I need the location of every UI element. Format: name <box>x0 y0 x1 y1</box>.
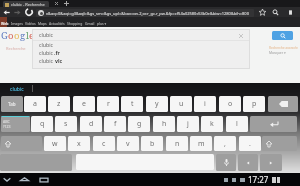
staticText: . <box>249 139 251 149</box>
button[interactable]: Tab <box>1 96 23 112</box>
button[interactable]: clubic <box>32 29 250 40</box>
button[interactable]: y <box>146 96 168 112</box>
staticText: Shopping <box>67 21 83 26</box>
staticText: clubic <box>39 31 54 38</box>
staticText: ABC <box>3 119 10 124</box>
staticText: a <box>33 99 37 109</box>
staticText: clubic <box>39 41 54 48</box>
button[interactable]: clubic <box>32 40 250 48</box>
button[interactable]: s <box>55 116 77 132</box>
button[interactable]: clubic - Recherche Go… <box>3 1 49 8</box>
staticText: e <box>82 99 86 109</box>
button[interactable]: z <box>48 96 70 112</box>
button[interactable]: Bookmark <box>257 7 268 17</box>
button[interactable]: Shift <box>1 136 42 151</box>
staticText: u <box>179 99 184 109</box>
staticText: plus ▾ <box>97 21 107 26</box>
button[interactable]: g <box>128 116 150 132</box>
staticText: Actualités <box>49 21 65 26</box>
button[interactable]: Shift <box>262 136 297 151</box>
button[interactable]: Back <box>1 173 12 186</box>
staticText: clubic <box>39 57 55 64</box>
button[interactable]: i <box>194 96 216 112</box>
button[interactable]: Enter <box>250 116 297 132</box>
button[interactable]: Web <box>0 20 10 26</box>
staticText: c <box>102 139 106 149</box>
button[interactable]: , <box>214 136 236 151</box>
staticText: o <box>8 29 14 42</box>
button[interactable]: f <box>104 116 126 132</box>
button[interactable]: Masquer ▾ <box>269 50 286 55</box>
button[interactable]: Symbols <box>1 116 30 132</box>
staticText: l <box>26 29 29 42</box>
button[interactable]: Vidéos <box>24 20 37 26</box>
button[interactable]: Backspace <box>268 96 298 112</box>
button[interactable]: Gmail <box>84 20 96 26</box>
button[interactable]: clubic <box>3 84 31 94</box>
button[interactable]: n <box>166 136 188 151</box>
button[interactable]: Move right <box>260 154 282 171</box>
button[interactable]: Menu <box>285 7 296 17</box>
button[interactable]: . <box>239 136 261 151</box>
button[interactable]: t <box>121 96 143 112</box>
staticText: Tab <box>8 101 16 107</box>
staticText: s <box>64 119 68 129</box>
button[interactable]: x <box>68 136 90 151</box>
button[interactable]: plus ▾ <box>96 20 108 26</box>
button[interactable]: clubic <box>32 56 250 64</box>
staticText: ?123 <box>3 124 11 129</box>
button[interactable]: Actualités <box>48 20 66 26</box>
button[interactable]: e <box>73 96 95 112</box>
staticText: Images <box>11 21 23 26</box>
staticText: 17:27 <box>248 174 269 185</box>
staticText: g <box>137 119 142 129</box>
staticText: z <box>57 99 61 109</box>
staticText: G <box>1 29 8 42</box>
button[interactable]: p <box>243 96 265 112</box>
button[interactable]: w <box>44 136 66 151</box>
button[interactable]: v <box>117 136 139 151</box>
button[interactable]: o <box>219 96 241 112</box>
button[interactable]: Images <box>10 20 24 26</box>
staticText: Recherche <box>6 46 26 51</box>
button[interactable]: v&aq=0&aqi=g3&aql=&gs_sm=&gs_upl=&bav=on… <box>36 9 254 17</box>
button[interactable]: Forward <box>12 7 23 17</box>
button[interactable]: j <box>177 116 199 132</box>
staticText: j <box>187 119 189 129</box>
button[interactable]: Maps <box>37 20 48 26</box>
button[interactable]: Voice input <box>216 154 236 171</box>
button[interactable]: Recent apps <box>38 173 49 186</box>
button[interactable]: c <box>93 136 115 151</box>
button[interactable]: Search <box>270 7 281 17</box>
button[interactable]: Rechercher <box>272 31 293 40</box>
button[interactable]: q <box>31 116 53 132</box>
button[interactable]: l <box>226 116 248 132</box>
staticText: i <box>204 99 206 109</box>
button[interactable]: h <box>153 116 175 132</box>
button[interactable]: k <box>201 116 223 132</box>
button[interactable]: r <box>97 96 119 112</box>
button[interactable]: d <box>80 116 102 132</box>
staticText: n <box>175 139 180 149</box>
button[interactable]: b <box>141 136 163 151</box>
button[interactable]: Shopping <box>66 20 84 26</box>
staticText: v <box>126 139 130 149</box>
button[interactable]: Clear <box>236 31 245 40</box>
staticText: clubic <box>39 49 54 56</box>
button[interactable]: Reload <box>23 7 34 17</box>
button[interactable]: Move left <box>238 154 258 171</box>
button[interactable]: m <box>190 136 212 151</box>
button[interactable]: clubic <box>32 48 250 56</box>
button[interactable]: Close tab <box>52 0 60 7</box>
button[interactable]: Home <box>19 173 30 186</box>
button[interactable]: New tab <box>62 0 71 7</box>
staticText: q <box>40 119 45 129</box>
staticText: m <box>198 139 205 149</box>
button[interactable]: a <box>24 96 46 112</box>
button[interactable]: Back <box>1 7 12 17</box>
button[interactable]: Recherche avancée <box>269 46 298 50</box>
button[interactable]: u <box>170 96 192 112</box>
staticText: k <box>210 119 214 129</box>
